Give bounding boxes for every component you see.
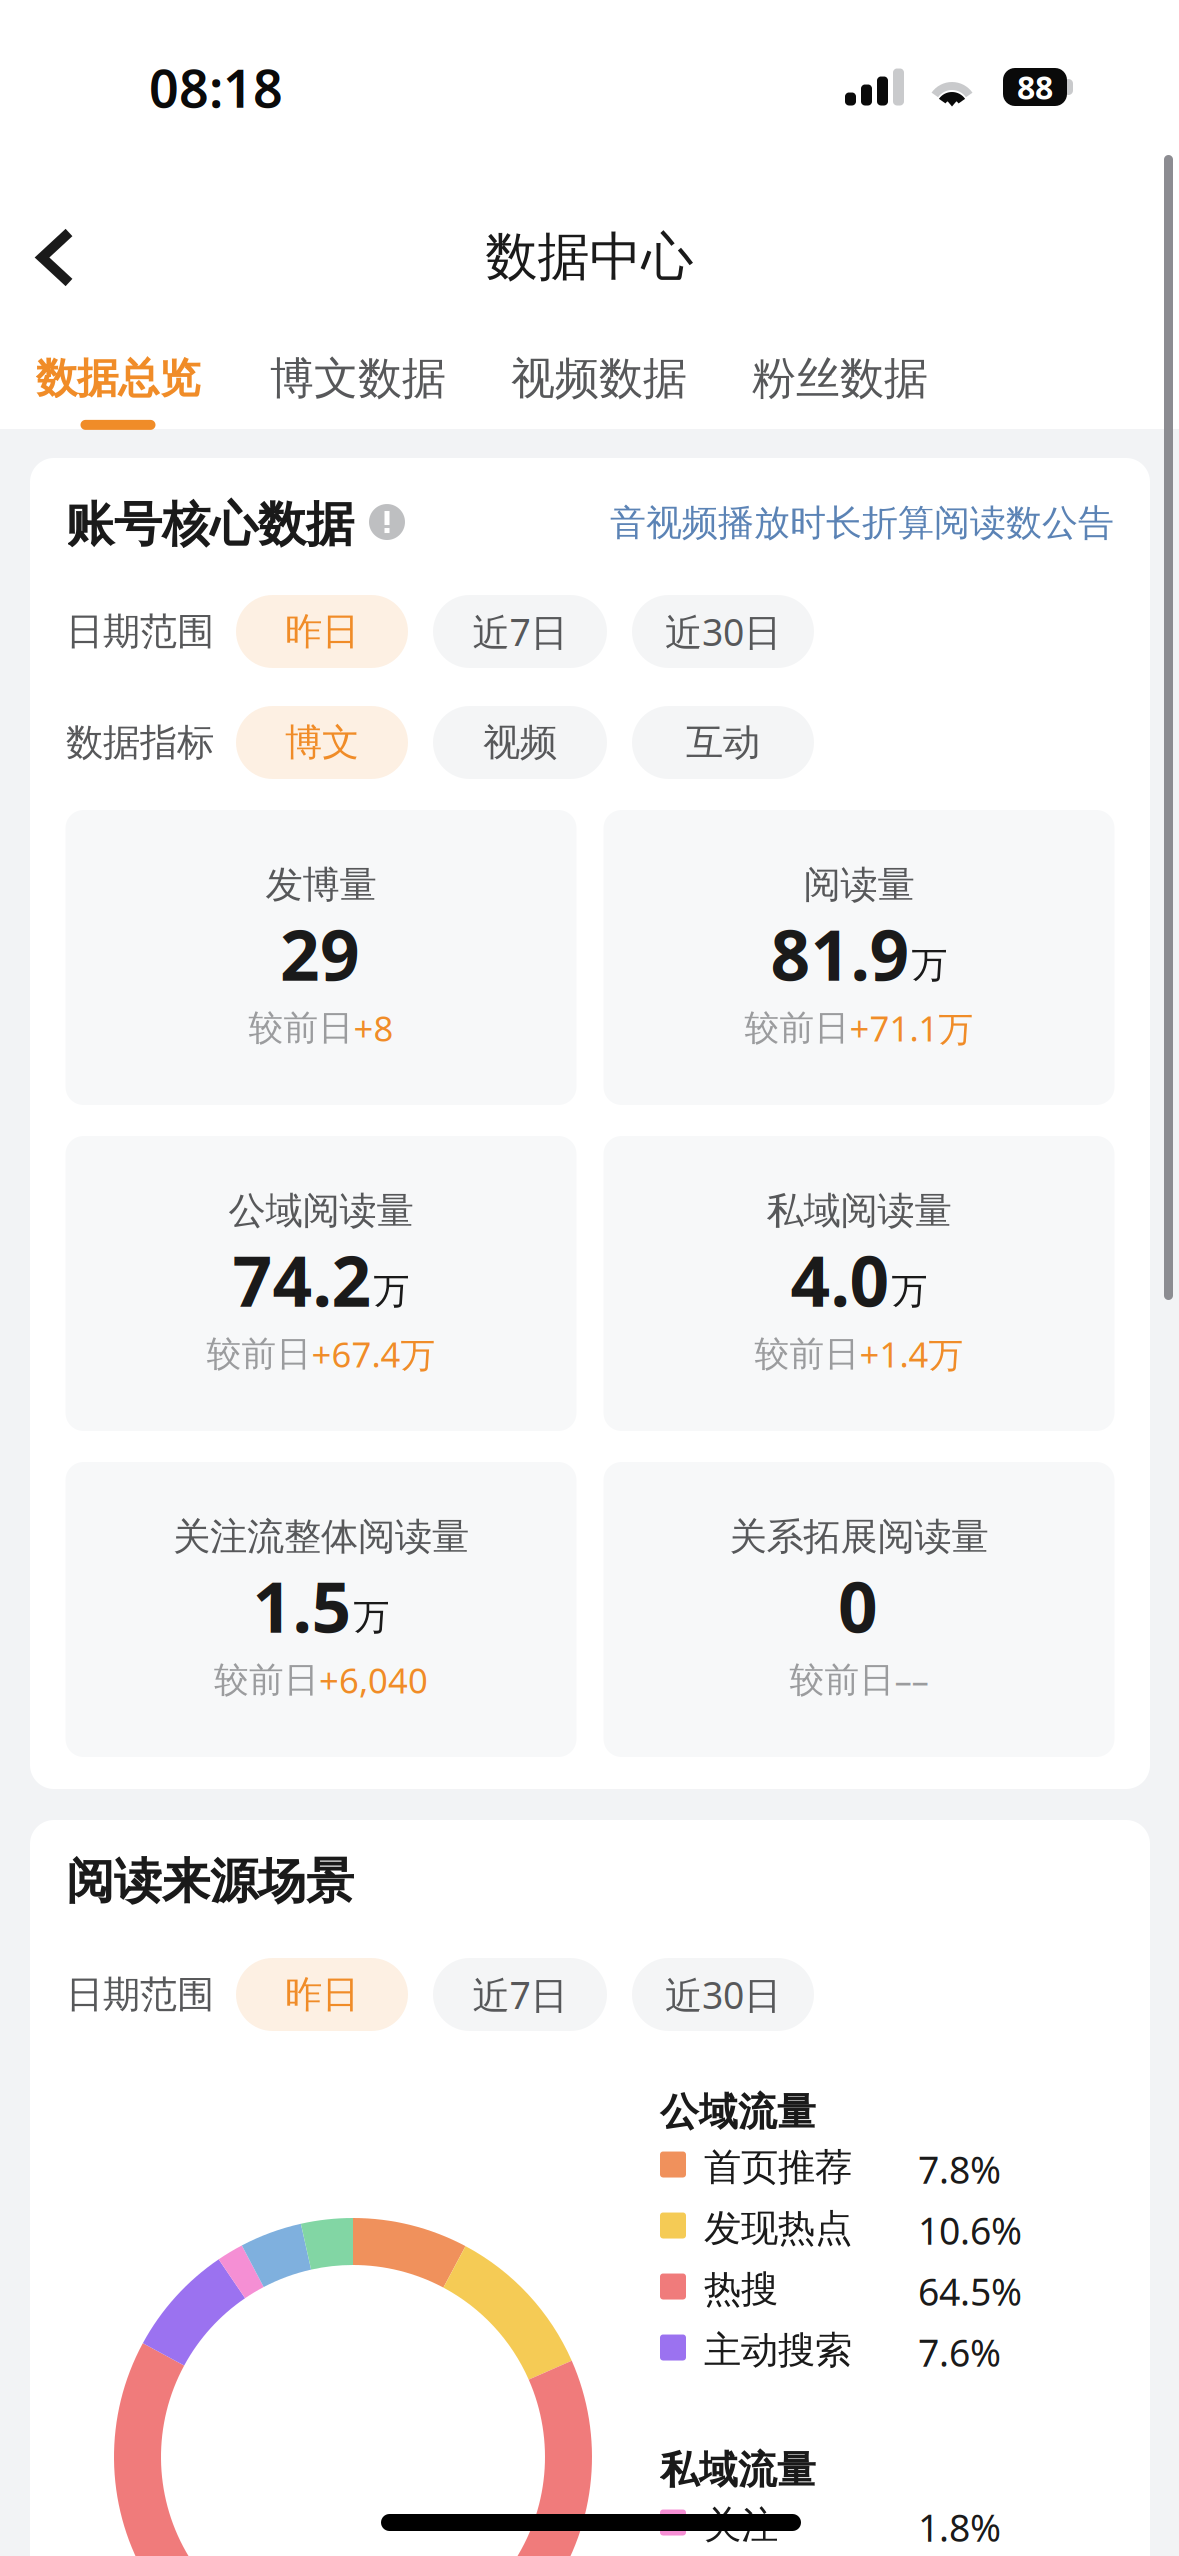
staticText: 博文数据 <box>270 351 446 405</box>
staticText: +67.4万 <box>311 1331 435 1377</box>
staticText: 近30日 <box>665 607 781 656</box>
staticText: 视频 <box>483 720 557 765</box>
staticText: 较前日 <box>248 1007 353 1049</box>
staticText: 互动 <box>686 720 760 765</box>
staticText: 博文 <box>285 720 359 765</box>
staticText: 较前日 <box>789 1659 894 1701</box>
staticText: 4.0 <box>790 1234 889 1326</box>
staticText: 私域流量 <box>660 2446 816 2494</box>
staticText: 发现热点 <box>704 2205 852 2251</box>
staticText: 较前日 <box>754 1333 859 1375</box>
button[interactable]: Back <box>0 216 99 298</box>
button[interactable]: 数据总览 <box>36 300 200 429</box>
staticText: 私域阅读量 <box>766 1188 951 1234</box>
staticText: 关系拓展阅读量 <box>729 1514 988 1560</box>
staticText: 主动搜索 <box>704 2327 852 2373</box>
staticText: 关注流整体阅读量 <box>173 1514 469 1560</box>
staticText: 日期范围 <box>66 1972 214 2017</box>
staticText: 1.8% <box>918 2502 1001 2552</box>
staticText: +71.1万 <box>849 1005 973 1051</box>
button[interactable]: 昨日 <box>236 1958 408 2031</box>
staticText: 昨日 <box>285 609 359 654</box>
staticText: 万 <box>891 1269 927 1313</box>
staticText: 64.5% <box>918 2266 1022 2316</box>
staticText: 近30日 <box>665 1970 781 2019</box>
staticText: 万 <box>373 1269 409 1313</box>
button[interactable]: 近7日 <box>433 595 607 668</box>
staticText: 首页推荐 <box>704 2144 852 2190</box>
staticText: 日期范围 <box>66 609 214 654</box>
staticText: 较前日 <box>744 1007 849 1049</box>
staticText: 0 <box>838 1560 878 1652</box>
staticText: 阅读量 <box>803 862 914 908</box>
staticText: 10.6% <box>918 2205 1022 2255</box>
staticText: 近7日 <box>472 607 567 656</box>
button[interactable]: 视频数据 <box>511 300 687 429</box>
staticText: 阅读来源场景 <box>66 1852 354 1911</box>
staticText: 7.6% <box>918 2327 1001 2377</box>
staticText: +1.4万 <box>859 1331 963 1377</box>
staticText: 公域流量 <box>660 2088 816 2136</box>
staticText: 视频数据 <box>511 351 687 405</box>
staticText: 公域阅读量 <box>228 1188 413 1234</box>
staticText: 08:18 <box>149 53 283 122</box>
staticText: +8 <box>353 1005 393 1051</box>
button[interactable]: 音视频播放时长折算阅读数公告 <box>610 501 1114 545</box>
staticText: 近7日 <box>472 1970 567 2019</box>
staticText: 昨日 <box>285 1972 359 2017</box>
staticText: –– <box>894 1657 928 1703</box>
staticText: 万 <box>911 943 947 987</box>
button[interactable]: 视频 <box>433 706 607 779</box>
button[interactable]: 近30日 <box>632 595 814 668</box>
button[interactable]: 博文 <box>236 706 408 779</box>
staticText: 粉丝数据 <box>752 351 928 405</box>
staticText: 音视频播放时长折算阅读数公告 <box>610 501 1114 545</box>
button[interactable]: 互动 <box>632 706 814 779</box>
staticText: 关注 <box>704 2502 778 2548</box>
staticText: 账号核心数据 <box>66 495 354 554</box>
staticText: 1.5 <box>252 1560 351 1652</box>
button[interactable]: 近7日 <box>433 1958 607 2031</box>
staticText: 74.2 <box>232 1234 371 1326</box>
staticText: 数据指标 <box>66 720 214 765</box>
staticText: 万 <box>353 1595 389 1639</box>
staticText: 81.9 <box>770 908 909 1000</box>
staticText: 发博量 <box>265 862 376 908</box>
button[interactable]: 近30日 <box>632 1958 814 2031</box>
button[interactable]: 粉丝数据 <box>752 300 928 429</box>
staticText: 较前日 <box>206 1333 311 1375</box>
staticText: 数据中心 <box>485 225 693 289</box>
staticText: 88 <box>1017 66 1053 108</box>
staticText: 数据总览 <box>36 353 200 404</box>
staticText: 热搜 <box>704 2266 778 2312</box>
staticText: 较前日 <box>214 1659 319 1701</box>
button[interactable]: 昨日 <box>236 595 408 668</box>
staticText: 7.8% <box>918 2144 1001 2194</box>
staticText: +6,040 <box>319 1657 428 1703</box>
staticText: 29 <box>280 908 360 1000</box>
button[interactable]: 博文数据 <box>270 300 446 429</box>
